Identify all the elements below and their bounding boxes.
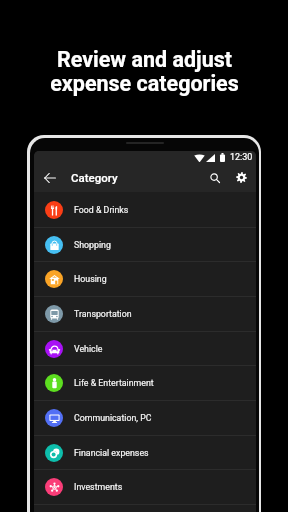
button[interactable]: Financial expenses bbox=[34, 435, 256, 470]
staticText: Communication, PC bbox=[74, 413, 152, 423]
button[interactable]: Housing bbox=[34, 261, 256, 296]
button[interactable]: Investments bbox=[34, 469, 256, 504]
staticText: Review and adjust expense categories bbox=[50, 47, 239, 97]
button[interactable]: Search bbox=[203, 166, 226, 189]
button[interactable]: Back bbox=[38, 166, 61, 189]
button[interactable]: Food & Drinks bbox=[34, 192, 256, 227]
button[interactable]: Income bbox=[34, 504, 256, 512]
button[interactable]: Transportation bbox=[34, 296, 256, 331]
button[interactable]: Shopping bbox=[34, 227, 256, 262]
staticText: Transportation bbox=[74, 309, 132, 319]
staticText: Housing bbox=[74, 274, 107, 284]
staticText: Category bbox=[71, 171, 118, 184]
staticText: Financial expenses bbox=[74, 448, 149, 458]
staticText: Vehicle bbox=[74, 344, 103, 354]
staticText: Food & Drinks bbox=[74, 205, 129, 215]
staticText: Life & Entertainment bbox=[74, 378, 154, 388]
button[interactable]: Communication, PC bbox=[34, 400, 256, 435]
staticText: Shopping bbox=[74, 240, 111, 250]
staticText: Investments bbox=[74, 482, 123, 492]
staticText: 12:30 bbox=[230, 152, 253, 163]
button[interactable]: Vehicle bbox=[34, 331, 256, 366]
button[interactable]: Life & Entertainment bbox=[34, 365, 256, 400]
button[interactable]: Settings bbox=[230, 166, 253, 189]
